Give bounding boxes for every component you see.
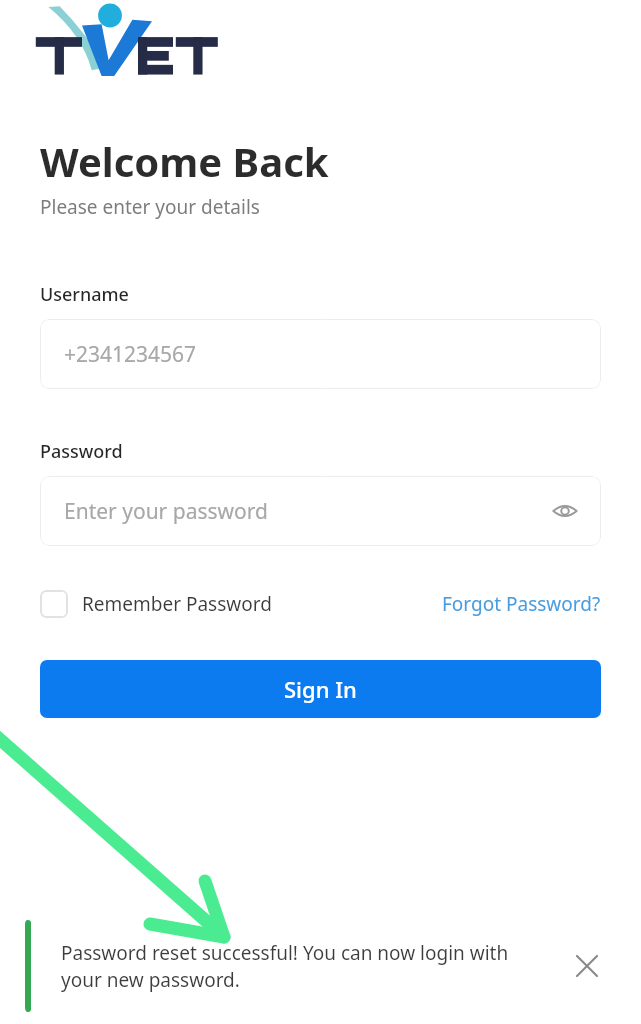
staticText: Welcome Back [40, 134, 329, 188]
button[interactable]: Sign In [40, 660, 601, 718]
staticText: Password reset successful! You can now l… [61, 940, 549, 993]
button[interactable]: Dismiss notification [561, 940, 613, 992]
staticText: +2341234567 [64, 340, 197, 369]
button[interactable]: Enter your password [40, 476, 601, 546]
button[interactable]: Password reset successful! You can now l… [25, 916, 613, 1016]
staticText: Please enter your details [40, 194, 260, 220]
staticText: Username [40, 282, 129, 307]
staticText: Remember Password [82, 591, 272, 617]
button[interactable]: Show password [543, 489, 587, 533]
staticText: Enter your password [64, 497, 268, 526]
button[interactable]: Remember Password [40, 590, 272, 618]
button[interactable]: +2341234567 [40, 319, 601, 389]
staticText: Forgot Password? [442, 591, 601, 617]
staticText: Sign In [284, 674, 357, 704]
button[interactable]: Forgot Password? [442, 591, 601, 617]
staticText: Password [40, 439, 123, 464]
